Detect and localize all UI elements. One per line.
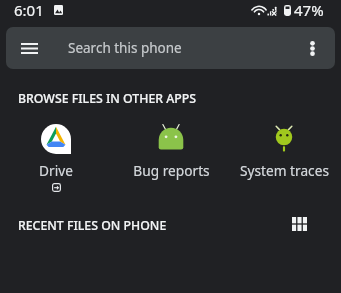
staticText: Drive (39, 161, 73, 180)
button[interactable]: Drive (0, 121, 112, 192)
staticText: 6:01 (14, 0, 44, 20)
staticText: 47% (294, 0, 324, 20)
staticText: RECENT FILES ON PHONE (18, 217, 167, 234)
button[interactable]: Grid view (282, 206, 317, 241)
staticText: System traces (240, 161, 329, 180)
staticText: BROWSE FILES IN OTHER APPS (18, 90, 197, 107)
staticText: Bug reports (133, 161, 210, 180)
button[interactable]: Bug reports (115, 121, 227, 180)
button[interactable]: More options (293, 29, 331, 67)
staticText: Search this phone (68, 39, 182, 57)
button[interactable]: Open navigation drawer (10, 29, 48, 67)
button[interactable]: System traces (228, 121, 340, 180)
button[interactable]: Open navigation drawer (6, 27, 335, 69)
